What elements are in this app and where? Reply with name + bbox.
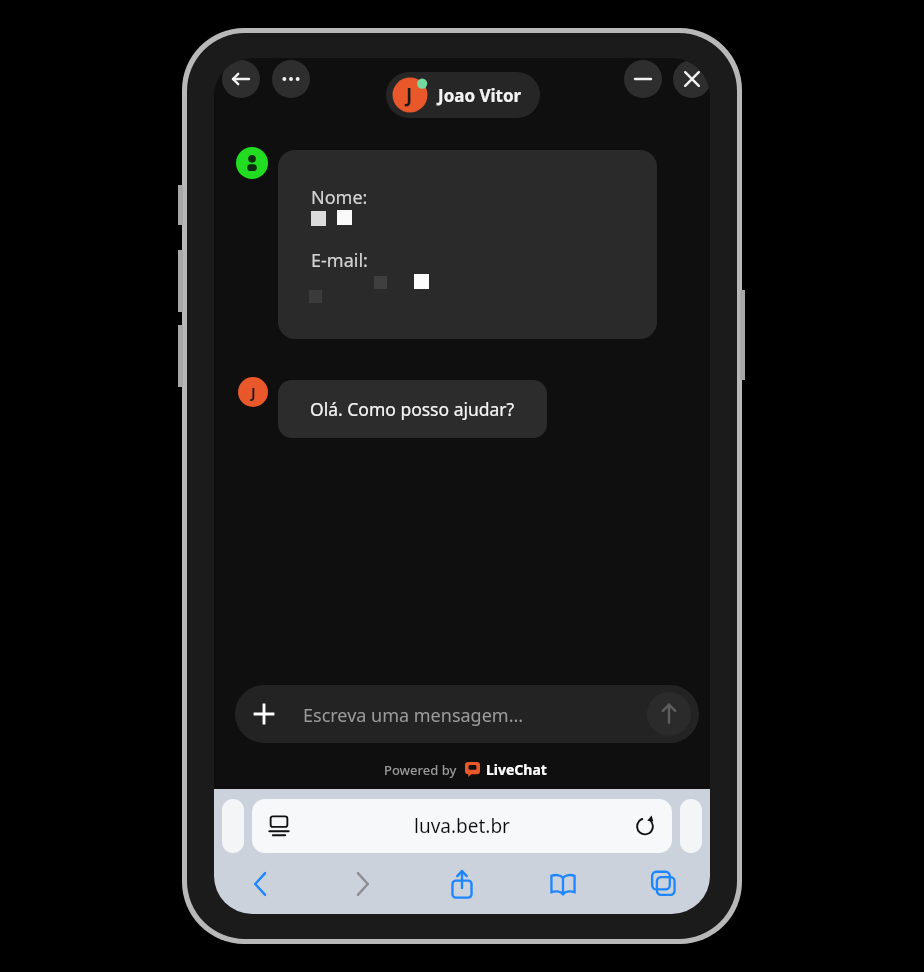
staticText: J: [406, 82, 413, 108]
staticText: J: [251, 383, 256, 402]
button[interactable]: Nome:: [278, 150, 657, 339]
button[interactable]: Forward: [337, 859, 387, 909]
button[interactable]: Bookmarks: [538, 859, 588, 909]
button[interactable]: Page settings: [252, 799, 672, 853]
button[interactable]: Close: [673, 60, 710, 98]
other: Page settings: [268, 815, 290, 837]
staticText: Joao Vitor: [438, 84, 522, 107]
staticText: Powered by: [384, 761, 457, 779]
staticText: Olá. Como posso ajudar?: [310, 397, 515, 421]
button[interactable]: Send: [647, 692, 691, 736]
staticText: Nome:: [311, 185, 368, 210]
staticText: luva.bet.br: [290, 813, 634, 839]
button[interactable]: Back: [236, 859, 286, 909]
button[interactable]: Olá. Como posso ajudar?: [278, 380, 547, 438]
staticText: E-mail:: [311, 248, 368, 273]
button[interactable]: Minimize: [624, 60, 662, 98]
staticText: LiveChat: [486, 760, 547, 779]
button[interactable]: Powered by: [384, 760, 547, 779]
button[interactable]: Tabs: [638, 859, 688, 909]
button[interactable]: Add attachment: [244, 694, 284, 734]
button[interactable]: Share: [437, 859, 487, 909]
button[interactable]: Back: [222, 60, 260, 98]
button[interactable]: Escreva uma mensagem...: [303, 703, 524, 728]
button[interactable]: J: [386, 72, 540, 118]
button[interactable]: More options: [272, 60, 310, 98]
other: Reload: [634, 815, 656, 837]
